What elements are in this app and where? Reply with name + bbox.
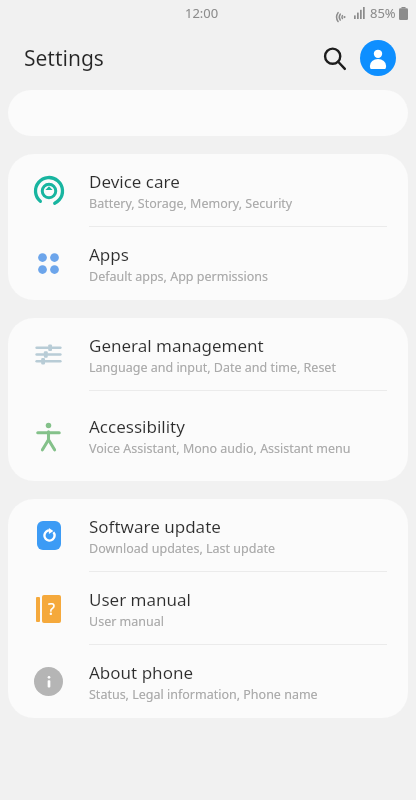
staticText: Voice Assistant, Mono audio, Assistant m… bbox=[89, 440, 351, 457]
button[interactable]: Accessibility bbox=[8, 391, 408, 481]
staticText: 85% bbox=[370, 4, 396, 22]
staticText: ? bbox=[48, 598, 55, 620]
staticText: User manual bbox=[89, 613, 164, 630]
staticText: Download updates, Last update bbox=[89, 540, 275, 557]
button[interactable]: Device care bbox=[8, 154, 408, 227]
button[interactable]: ? bbox=[8, 572, 408, 645]
button[interactable]: General management bbox=[8, 318, 408, 391]
button[interactable]: Account bbox=[360, 40, 396, 76]
staticText: Default apps, App permissions bbox=[89, 268, 269, 285]
staticText: Device care bbox=[89, 170, 180, 193]
staticText: Software update bbox=[89, 515, 221, 538]
staticText: User manual bbox=[89, 588, 191, 611]
button[interactable]: Search bbox=[312, 36, 356, 80]
staticText: Settings bbox=[24, 44, 104, 73]
button[interactable]: Apps bbox=[8, 227, 408, 300]
staticText: Accessibility bbox=[89, 415, 185, 438]
button[interactable]: About phone bbox=[8, 645, 408, 718]
staticText: Language and input, Date and time, Reset bbox=[89, 359, 336, 376]
staticText: Battery, Storage, Memory, Security bbox=[89, 195, 293, 212]
staticText: Status, Legal information, Phone name bbox=[89, 686, 318, 703]
staticText: General management bbox=[89, 334, 264, 357]
button[interactable]: Software update bbox=[8, 499, 408, 572]
staticText: Apps bbox=[89, 243, 129, 266]
staticText: 12:00 bbox=[185, 4, 219, 22]
staticText: About phone bbox=[89, 661, 194, 684]
